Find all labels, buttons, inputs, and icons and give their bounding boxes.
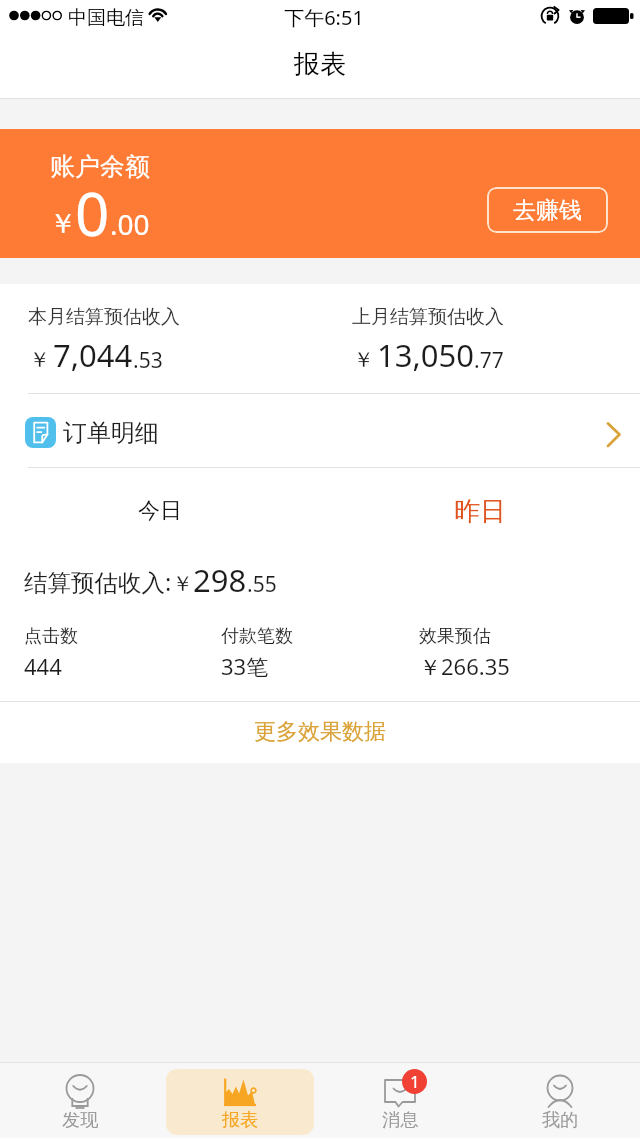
staticText: 上月结算预估收入 — [352, 305, 504, 329]
button[interactable]: 去赚钱 — [487, 187, 608, 233]
staticText: 结算预估收入: — [24, 566, 172, 598]
staticText: 0 — [75, 172, 110, 254]
staticText: 报表 — [222, 1108, 259, 1131]
staticText: .00 — [110, 205, 150, 243]
button[interactable]: 发现 — [0, 1063, 160, 1138]
staticText: 本月结算预估收入 — [28, 305, 180, 329]
staticText: 13,050 — [377, 334, 474, 376]
staticText: 昨日 — [454, 495, 506, 528]
staticText: 今日 — [138, 497, 182, 525]
staticText: .77 — [474, 346, 504, 375]
staticText: 发现 — [62, 1108, 99, 1131]
staticText: 我的 — [542, 1108, 579, 1131]
other: 更多 — [604, 422, 624, 442]
staticText: 账户余额 — [50, 151, 150, 182]
staticText: 1 — [410, 1070, 420, 1093]
button[interactable]: 更多效果数据 — [0, 702, 640, 763]
staticText: 消息 — [382, 1108, 419, 1131]
button[interactable]: 我的 — [480, 1063, 640, 1138]
staticText: ￥266.35 — [419, 651, 510, 681]
staticText: ￥ — [353, 347, 374, 373]
button[interactable]: 消息 — [320, 1063, 480, 1138]
staticText: 点击数 — [24, 625, 78, 648]
staticText: ￥ — [49, 206, 77, 241]
button[interactable]: 今日 — [0, 468, 320, 543]
staticText: 444 — [24, 651, 62, 681]
staticText: 中国电信 — [68, 6, 144, 30]
staticText: 更多效果数据 — [254, 718, 386, 746]
staticText: 298 — [193, 559, 247, 601]
button[interactable]: 报表 — [160, 1063, 320, 1138]
staticText: 去赚钱 — [513, 196, 582, 225]
staticText: 付款笔数 — [221, 625, 293, 648]
staticText: 报表 — [0, 48, 640, 81]
staticText: 效果预估 — [419, 625, 491, 648]
button[interactable]: 订单明细 — [0, 394, 640, 467]
staticText: 订单明细 — [63, 418, 159, 448]
staticText: 7,044 — [53, 334, 133, 376]
button[interactable]: 昨日 — [320, 468, 640, 543]
staticText: .55 — [247, 570, 277, 599]
staticText: 33笔 — [221, 651, 269, 681]
staticText: 下午6:51 — [4, 4, 640, 31]
staticText: ￥ — [172, 571, 193, 597]
staticText: .53 — [133, 346, 163, 375]
staticText: ￥ — [29, 347, 50, 373]
